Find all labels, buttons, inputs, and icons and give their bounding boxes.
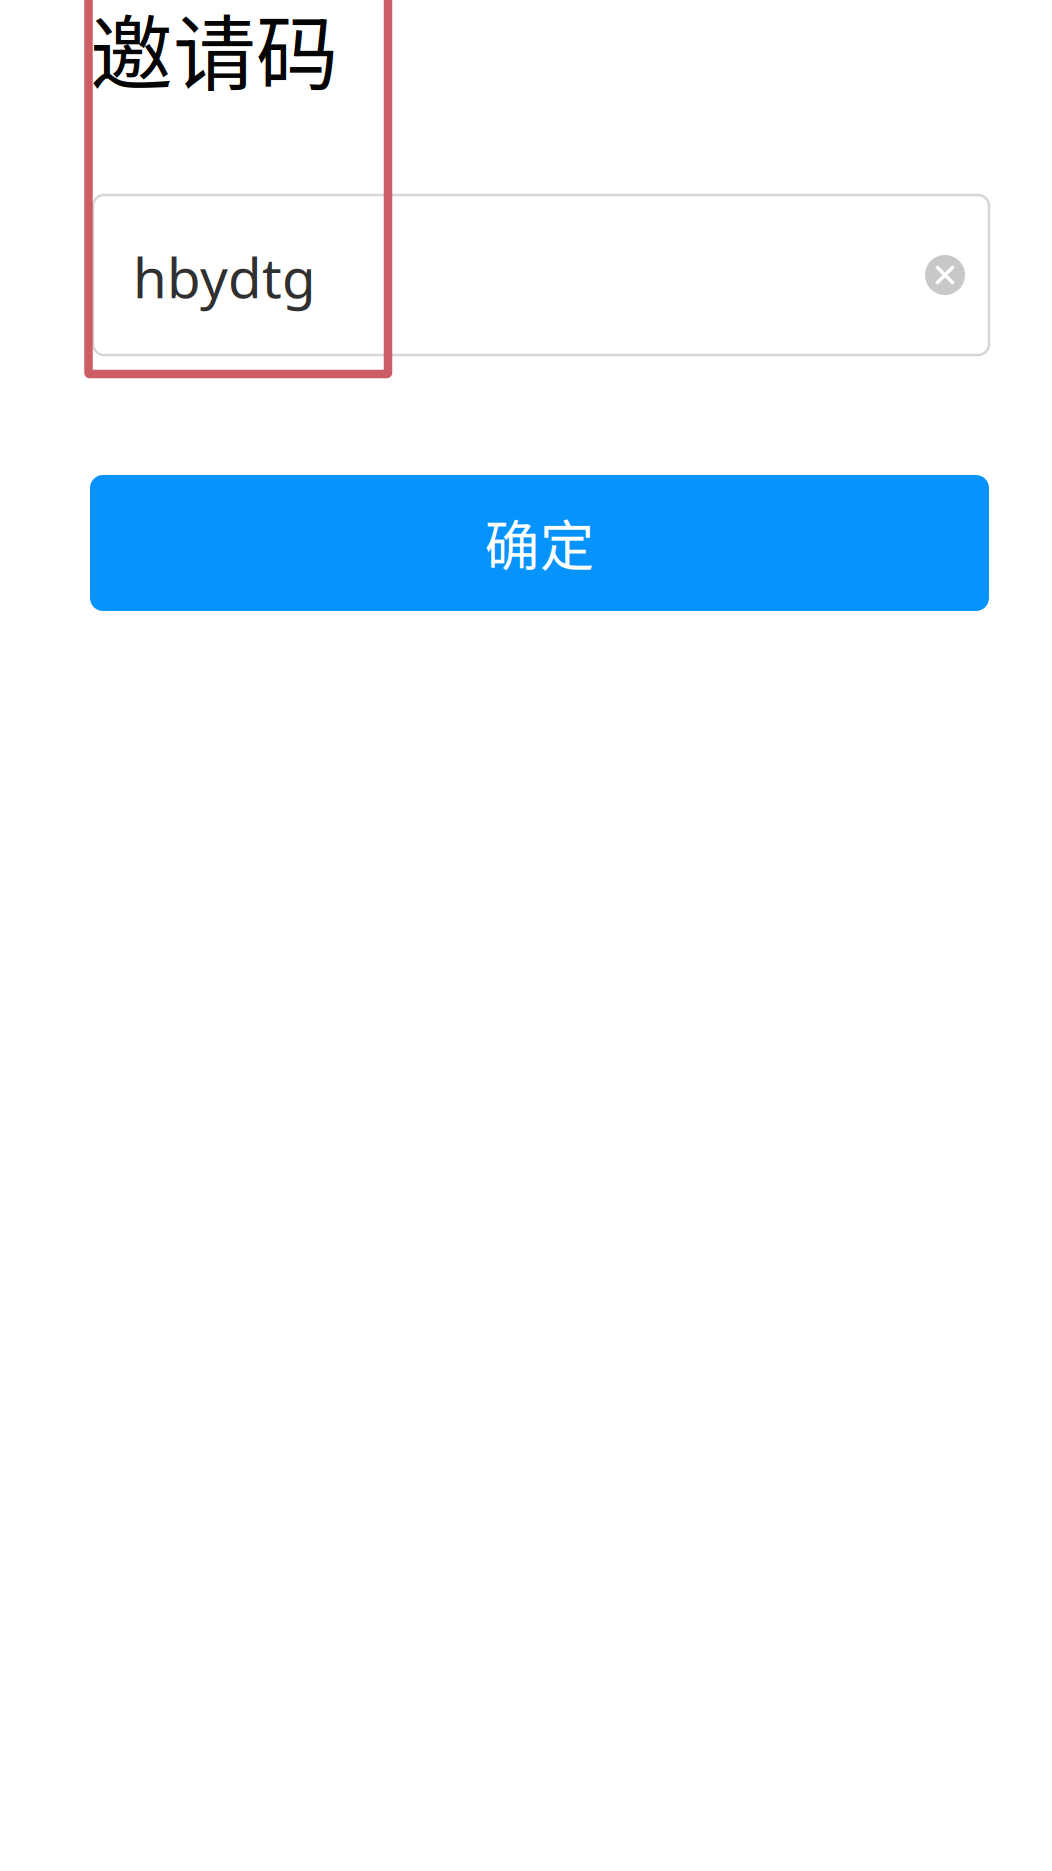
staticText: 确定 [484,502,594,582]
staticText: 邀请码 [90,0,339,108]
button[interactable]: 确定 [90,475,989,611]
button[interactable]: Clear text [925,255,965,295]
staticText: hbydtg [133,240,316,314]
button[interactable]: hbydtg [93,195,989,355]
